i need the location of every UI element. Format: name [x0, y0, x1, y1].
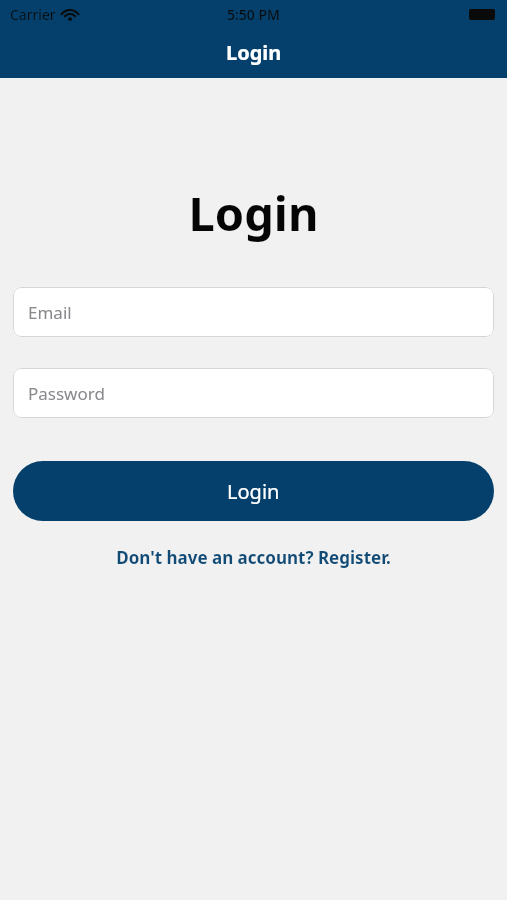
staticText: Login — [227, 478, 280, 505]
button[interactable]: Password — [13, 368, 494, 418]
button[interactable]: Login — [13, 461, 494, 521]
staticText: Email — [28, 301, 72, 324]
button[interactable]: Don't have an account? Register. — [13, 542, 494, 573]
staticText: Password — [28, 382, 105, 405]
staticText: Login — [226, 39, 282, 66]
staticText: 5:50 PM — [227, 5, 280, 24]
staticText: Login — [13, 181, 494, 245]
staticText: Don't have an account? Register. — [116, 546, 391, 569]
button[interactable]: Email — [13, 287, 494, 337]
staticText: Carrier — [10, 5, 56, 24]
